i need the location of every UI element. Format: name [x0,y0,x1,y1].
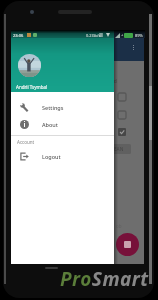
staticText: ed [111,78,117,85]
staticText: 89% [135,33,143,38]
staticText: ProSmart [60,266,149,292]
button[interactable] [116,233,139,256]
staticText: Settings [42,104,64,111]
button[interactable] [118,93,126,101]
staticText: Logout [42,153,61,160]
staticText: EAN [114,146,124,152]
staticText: + [121,32,124,37]
staticText: 23:06 [13,33,24,38]
button[interactable] [118,128,126,136]
staticText: Andrii Tsymbal [16,84,48,90]
button[interactable]: EAN [106,144,131,154]
staticText: ob [116,223,122,229]
button[interactable]: About [11,119,114,130]
staticText: Account [17,139,35,145]
button[interactable]: Logout [11,151,114,162]
staticText: 0.2Gb/s [86,33,101,38]
button[interactable] [118,111,126,119]
staticText: About [42,121,58,128]
button[interactable]: Settings [11,102,114,113]
